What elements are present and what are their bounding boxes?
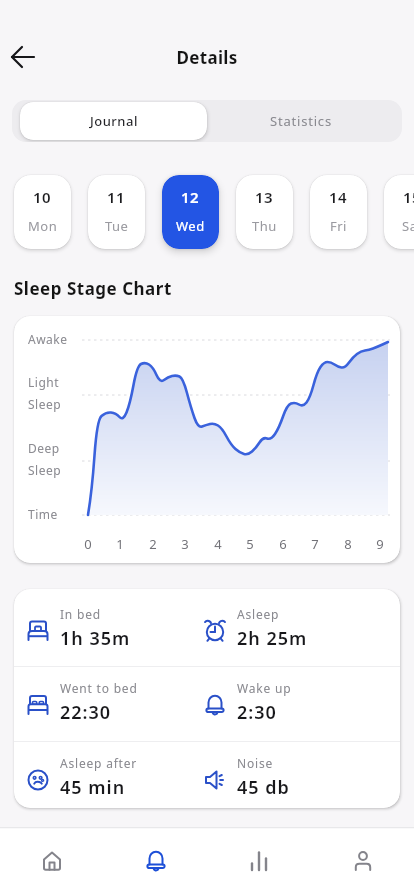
staticText: Fri [330, 217, 347, 235]
staticText: Noise [237, 755, 273, 771]
button[interactable]: 10 [14, 175, 71, 249]
button[interactable] [5, 39, 41, 75]
button[interactable]: Asleep after [26, 751, 196, 803]
staticText: 2:30 [237, 700, 277, 725]
staticText: 0 [78, 535, 98, 553]
button[interactable]: 15 [384, 175, 414, 249]
staticText: 1 [110, 535, 130, 553]
staticText: Asleep after [60, 755, 138, 771]
staticText: 4 [208, 535, 228, 553]
button[interactable]: In bed [26, 602, 196, 654]
staticText: Details [0, 46, 414, 69]
staticText: 5 [240, 535, 260, 553]
staticText: Awake [28, 331, 68, 347]
staticText: Wake up [237, 680, 292, 696]
staticText: Sat [402, 217, 414, 235]
staticText: Sleep [28, 462, 62, 478]
button[interactable]: Journal [20, 102, 207, 140]
button[interactable] [132, 837, 179, 884]
staticText: Time [28, 506, 58, 522]
staticText: 14 [329, 187, 348, 207]
staticText: 7 [305, 535, 325, 553]
staticText: 22:30 [60, 700, 112, 725]
staticText: Went to bed [60, 680, 138, 696]
staticText: 13 [255, 187, 274, 207]
button[interactable]: 14 [310, 175, 367, 249]
button[interactable]: Noise [203, 751, 373, 803]
staticText: 6 [273, 535, 293, 553]
staticText: 10 [33, 187, 52, 207]
staticText: Asleep [237, 606, 280, 622]
staticText: Mon [28, 217, 58, 235]
button[interactable]: 13 [236, 175, 293, 249]
button[interactable]: Statistics [207, 102, 394, 140]
staticText: 2h 25m [237, 626, 308, 651]
staticText: Journal [90, 112, 138, 130]
staticText: 3 [175, 535, 195, 553]
button[interactable] [235, 837, 282, 884]
staticText: Tue [105, 217, 129, 235]
staticText: 2 [143, 535, 163, 553]
staticText: 11 [107, 187, 126, 207]
staticText: 1h 35m [60, 626, 131, 651]
button[interactable]: Went to bed [26, 676, 196, 728]
button[interactable]: Wake up [203, 676, 373, 728]
button[interactable] [28, 837, 75, 884]
staticText: 8 [338, 535, 358, 553]
staticText: 12 [181, 187, 200, 207]
staticText: 15 [403, 187, 414, 207]
staticText: 45 min [60, 775, 126, 800]
button[interactable] [339, 837, 386, 884]
staticText: 9 [370, 535, 390, 553]
staticText: In bed [60, 606, 101, 622]
button[interactable]: Asleep [203, 602, 373, 654]
button[interactable]: 11 [88, 175, 145, 249]
staticText: Thu [252, 217, 277, 235]
staticText: Deep [28, 440, 60, 456]
staticText: Sleep [28, 396, 62, 412]
staticText: 45 db [237, 775, 290, 800]
staticText: Light [28, 374, 60, 390]
staticText: Sleep Stage Chart [14, 277, 172, 300]
staticText: Statistics [270, 112, 332, 130]
staticText: Wed [176, 217, 205, 235]
button[interactable]: 12 [162, 175, 219, 249]
